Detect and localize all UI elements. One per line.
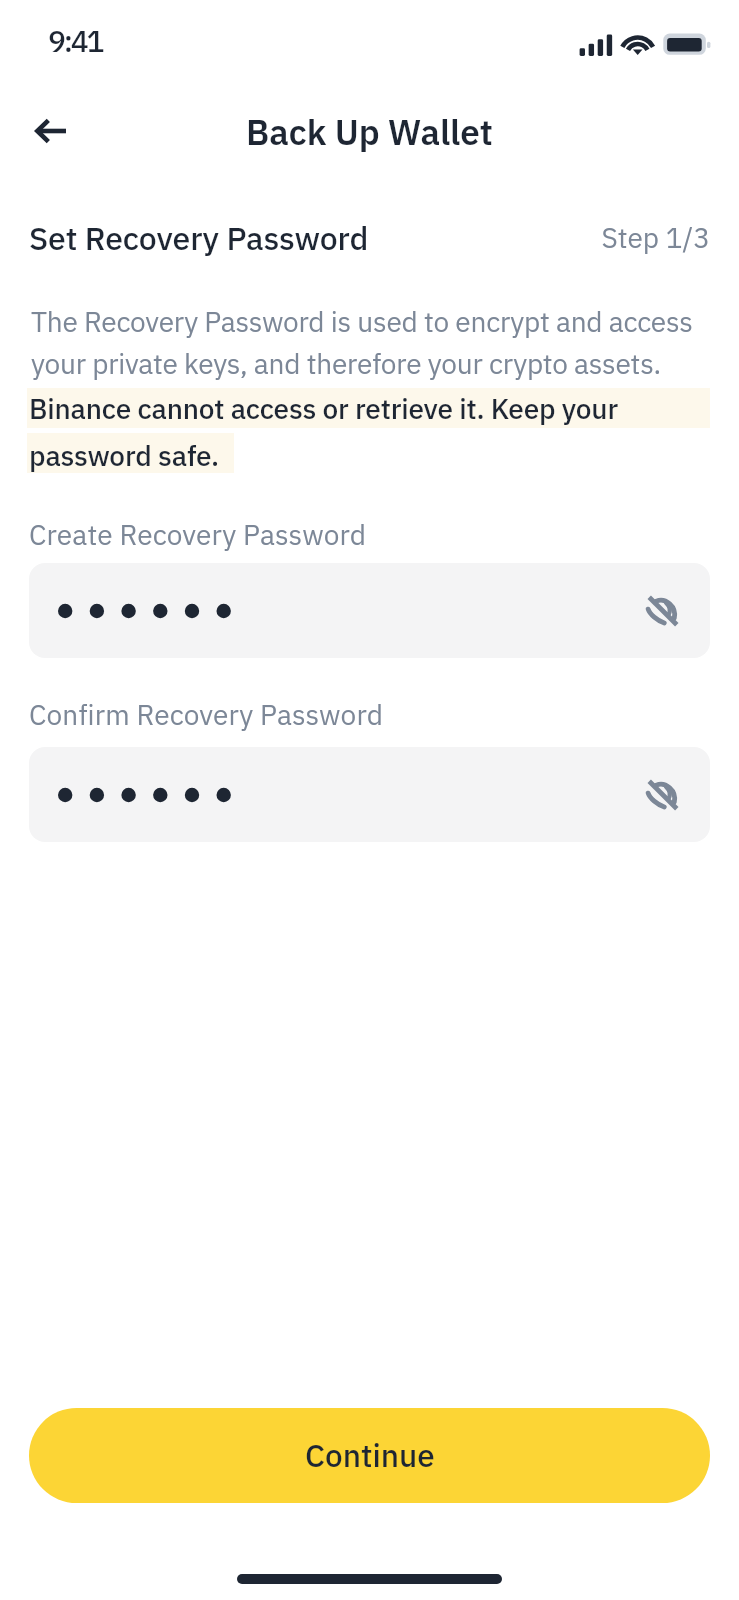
staticText: Continue: [305, 1435, 435, 1476]
staticText: Create Recovery Password: [29, 516, 367, 552]
button[interactable]: Toggle password visibility: [626, 758, 700, 832]
staticText: The Recovery Password is used to encrypt…: [31, 303, 712, 382]
staticText: Set Recovery Password: [29, 217, 369, 259]
button[interactable]: Back: [21, 102, 79, 160]
staticText: Confirm Recovery Password: [29, 696, 384, 732]
button[interactable]: Continue: [29, 1408, 710, 1503]
button[interactable]: Toggle password visibility: [626, 574, 700, 648]
staticText: Step 1/3: [0, 219, 710, 255]
staticText: Back Up Wallet: [0, 109, 739, 155]
staticText: Binance cannot access or retrieve it. Ke…: [29, 390, 710, 474]
button[interactable]: Toggle password visibility: [29, 563, 710, 658]
button[interactable]: Toggle password visibility: [29, 747, 710, 842]
staticText: 9:41: [48, 21, 103, 60]
